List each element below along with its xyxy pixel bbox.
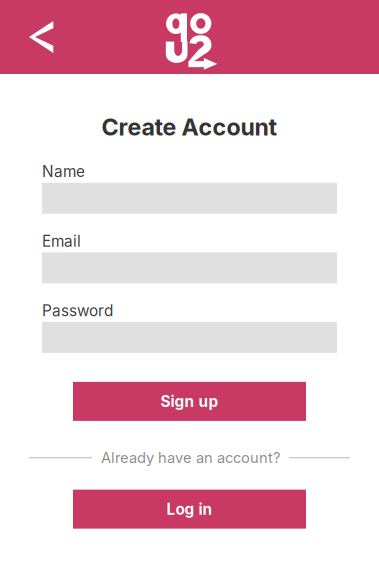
staticText: Name (42, 162, 85, 181)
button[interactable]: Sign up (73, 382, 306, 421)
button[interactable]: Log in (73, 490, 306, 529)
staticText: Create Account (101, 113, 277, 141)
staticText: Already have an account? (101, 449, 280, 467)
button[interactable]: Back (0, 0, 83, 74)
staticText: Email (42, 232, 81, 250)
staticText: Password (42, 301, 113, 320)
staticText: Log in (166, 500, 212, 518)
staticText: Sign up (160, 392, 218, 411)
